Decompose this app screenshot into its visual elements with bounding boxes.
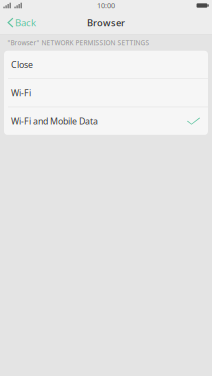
staticText: Wi-Fi — [11, 87, 31, 99]
staticText: "Browser" NETWORK PERMISSION SETTINGS — [7, 38, 149, 47]
button[interactable]: Close — [4, 51, 208, 78]
button[interactable]: Wi-Fi and Mobile Data — [4, 107, 208, 135]
staticText: Browser — [87, 16, 125, 29]
button[interactable]: Wi-Fi — [4, 79, 208, 107]
button[interactable]: Back — [0, 11, 40, 34]
staticText: 10:00 — [97, 1, 115, 10]
staticText: Wi-Fi and Mobile Data — [11, 115, 98, 127]
staticText: Close — [11, 59, 33, 71]
staticText: Back — [15, 16, 36, 29]
